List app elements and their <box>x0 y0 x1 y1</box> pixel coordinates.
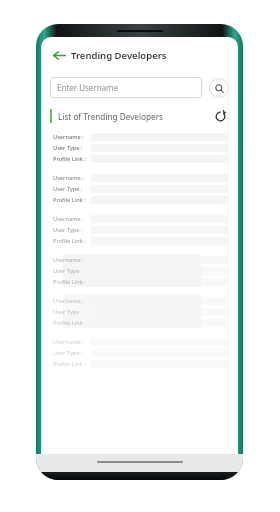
staticText: Username : <box>53 256 84 264</box>
button[interactable]: Username : <box>41 294 238 335</box>
staticText: Profile Link : <box>53 237 86 245</box>
button[interactable]: Back <box>49 45 69 65</box>
button[interactable]: Refresh <box>211 108 229 124</box>
staticText: Username : <box>53 174 84 182</box>
staticText: User Type : <box>53 226 83 234</box>
button[interactable]: Username : <box>41 212 238 253</box>
staticText: List of Trending Developers <box>58 111 163 122</box>
staticText: Trending Developers <box>71 49 167 62</box>
button[interactable]: Username : <box>41 171 238 212</box>
button[interactable]: Username : <box>41 130 238 171</box>
button[interactable]: Username : <box>41 253 238 294</box>
staticText: Username : <box>53 338 84 346</box>
button[interactable]: Username : <box>41 335 238 376</box>
staticText: User Type : <box>53 308 83 316</box>
staticText: Username : <box>53 297 84 305</box>
staticText: Profile Link : <box>53 360 86 368</box>
staticText: Profile Link : <box>53 196 86 204</box>
button[interactable]: Search <box>209 78 229 98</box>
staticText: Profile Link : <box>53 319 86 327</box>
button[interactable]: Enter Username <box>50 77 202 98</box>
staticText: Username : <box>53 133 84 141</box>
staticText: User Type : <box>53 267 83 275</box>
staticText: User Type : <box>53 144 83 152</box>
staticText: Username : <box>53 215 84 223</box>
staticText: Profile Link : <box>53 278 86 286</box>
staticText: User Type : <box>53 349 83 357</box>
staticText: User Type : <box>53 185 83 193</box>
staticText: Enter Username <box>57 82 119 93</box>
staticText: Profile Link : <box>53 155 86 163</box>
